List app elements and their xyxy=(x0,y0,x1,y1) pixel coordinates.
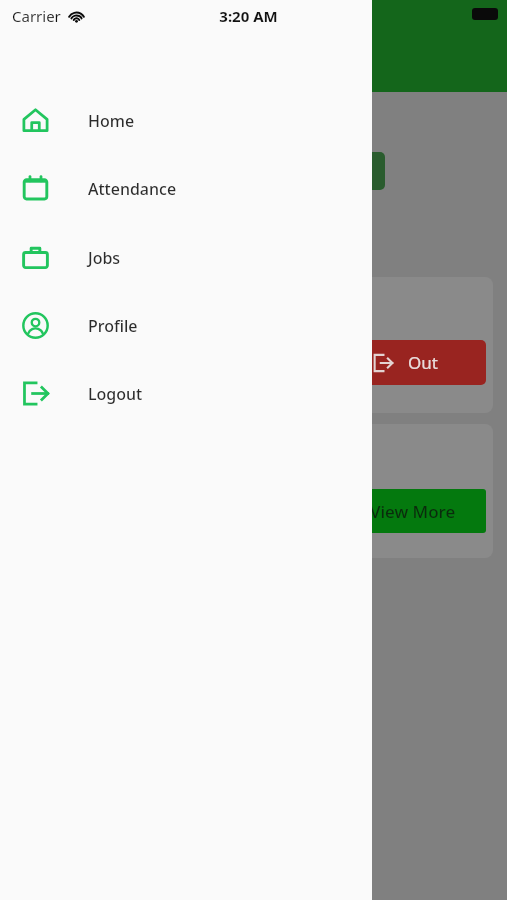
staticText: Logout xyxy=(88,383,143,405)
staticText: Jobs xyxy=(88,247,121,269)
button[interactable]: Out xyxy=(340,340,486,385)
button[interactable]: Logout xyxy=(0,370,372,417)
button[interactable]: View More xyxy=(340,489,486,533)
staticText: Out xyxy=(408,351,438,374)
staticText: 3:20 AM xyxy=(219,6,278,26)
button[interactable]: Profile xyxy=(0,302,372,349)
staticText: View More xyxy=(370,500,456,523)
button[interactable]: Jobs xyxy=(0,234,372,281)
staticText: Home xyxy=(88,110,135,132)
button[interactable]: Attendance xyxy=(0,165,372,212)
staticText: Carrier xyxy=(12,6,61,26)
staticText: Profile xyxy=(88,315,138,337)
button[interactable] xyxy=(333,152,385,190)
staticText: Attendance xyxy=(88,178,177,200)
button[interactable]: Home xyxy=(0,97,372,144)
